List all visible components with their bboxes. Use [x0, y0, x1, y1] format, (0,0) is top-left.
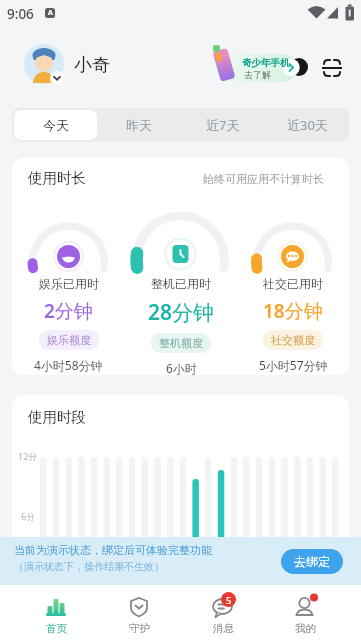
- staticText: 守护: [129, 622, 150, 635]
- staticText: A: [48, 8, 53, 18]
- button[interactable]: 今天: [14, 110, 97, 140]
- staticText: 娱乐额度: [47, 333, 91, 347]
- staticText: 5: [226, 594, 232, 607]
- staticText: 昨天: [126, 117, 152, 133]
- staticText: 9:06: [7, 5, 34, 23]
- button[interactable]: 奇少年手机: [212, 54, 304, 82]
- button[interactable]: 首页: [34, 585, 78, 635]
- staticText: 使用时段: [28, 408, 86, 426]
- staticText: 2分钟: [44, 298, 93, 324]
- staticText: 18分钟: [263, 298, 323, 324]
- staticText: 始终可用应用不计算时长: [203, 172, 324, 186]
- button[interactable]: 守护: [117, 585, 161, 635]
- button[interactable]: 社交已用时: [237, 158, 349, 373]
- staticText: 去了解: [244, 69, 271, 80]
- staticText: 当前为演示状态，绑定后可体验完整功能: [14, 543, 212, 557]
- staticText: 娱乐已用时: [39, 276, 99, 291]
- staticText: 消息: [213, 622, 234, 635]
- staticText: 小奇: [74, 54, 110, 77]
- staticText: 28分钟: [148, 298, 215, 327]
- staticText: 整机额度: [159, 336, 203, 350]
- button[interactable]: [24, 44, 64, 84]
- staticText: 5小时57分钟: [259, 357, 328, 373]
- button[interactable]: 5: [199, 585, 247, 635]
- staticText: 6分: [21, 510, 36, 522]
- button[interactable]: 近30天: [265, 108, 349, 142]
- button[interactable]: 娱乐已用时: [12, 158, 125, 373]
- staticText: 社交已用时: [263, 276, 323, 291]
- staticText: 整机已用时: [151, 276, 211, 291]
- staticText: 去绑定: [294, 554, 330, 569]
- staticText: 6小时: [166, 360, 197, 375]
- staticText: 12分: [18, 450, 38, 462]
- button[interactable]: 昨天: [97, 108, 181, 142]
- button[interactable]: 去绑定: [281, 549, 343, 574]
- staticText: 首页: [46, 622, 67, 635]
- button[interactable]: 整机已用时: [125, 158, 237, 375]
- button[interactable]: 近7天: [181, 108, 265, 142]
- staticText: 4小时58分钟: [34, 357, 103, 373]
- button[interactable]: [322, 58, 342, 78]
- staticText: 今天: [43, 117, 69, 133]
- button[interactable]: 我的: [283, 585, 327, 635]
- staticText: 近30天: [287, 116, 328, 134]
- staticText: （演示状态下，操作结果不生效）: [14, 560, 164, 573]
- staticText: 近7天: [206, 116, 240, 134]
- staticText: 社交额度: [271, 333, 315, 347]
- staticText: 奇少年手机: [242, 57, 290, 69]
- staticText: 我的: [295, 622, 316, 635]
- staticText: 使用时长: [28, 169, 86, 187]
